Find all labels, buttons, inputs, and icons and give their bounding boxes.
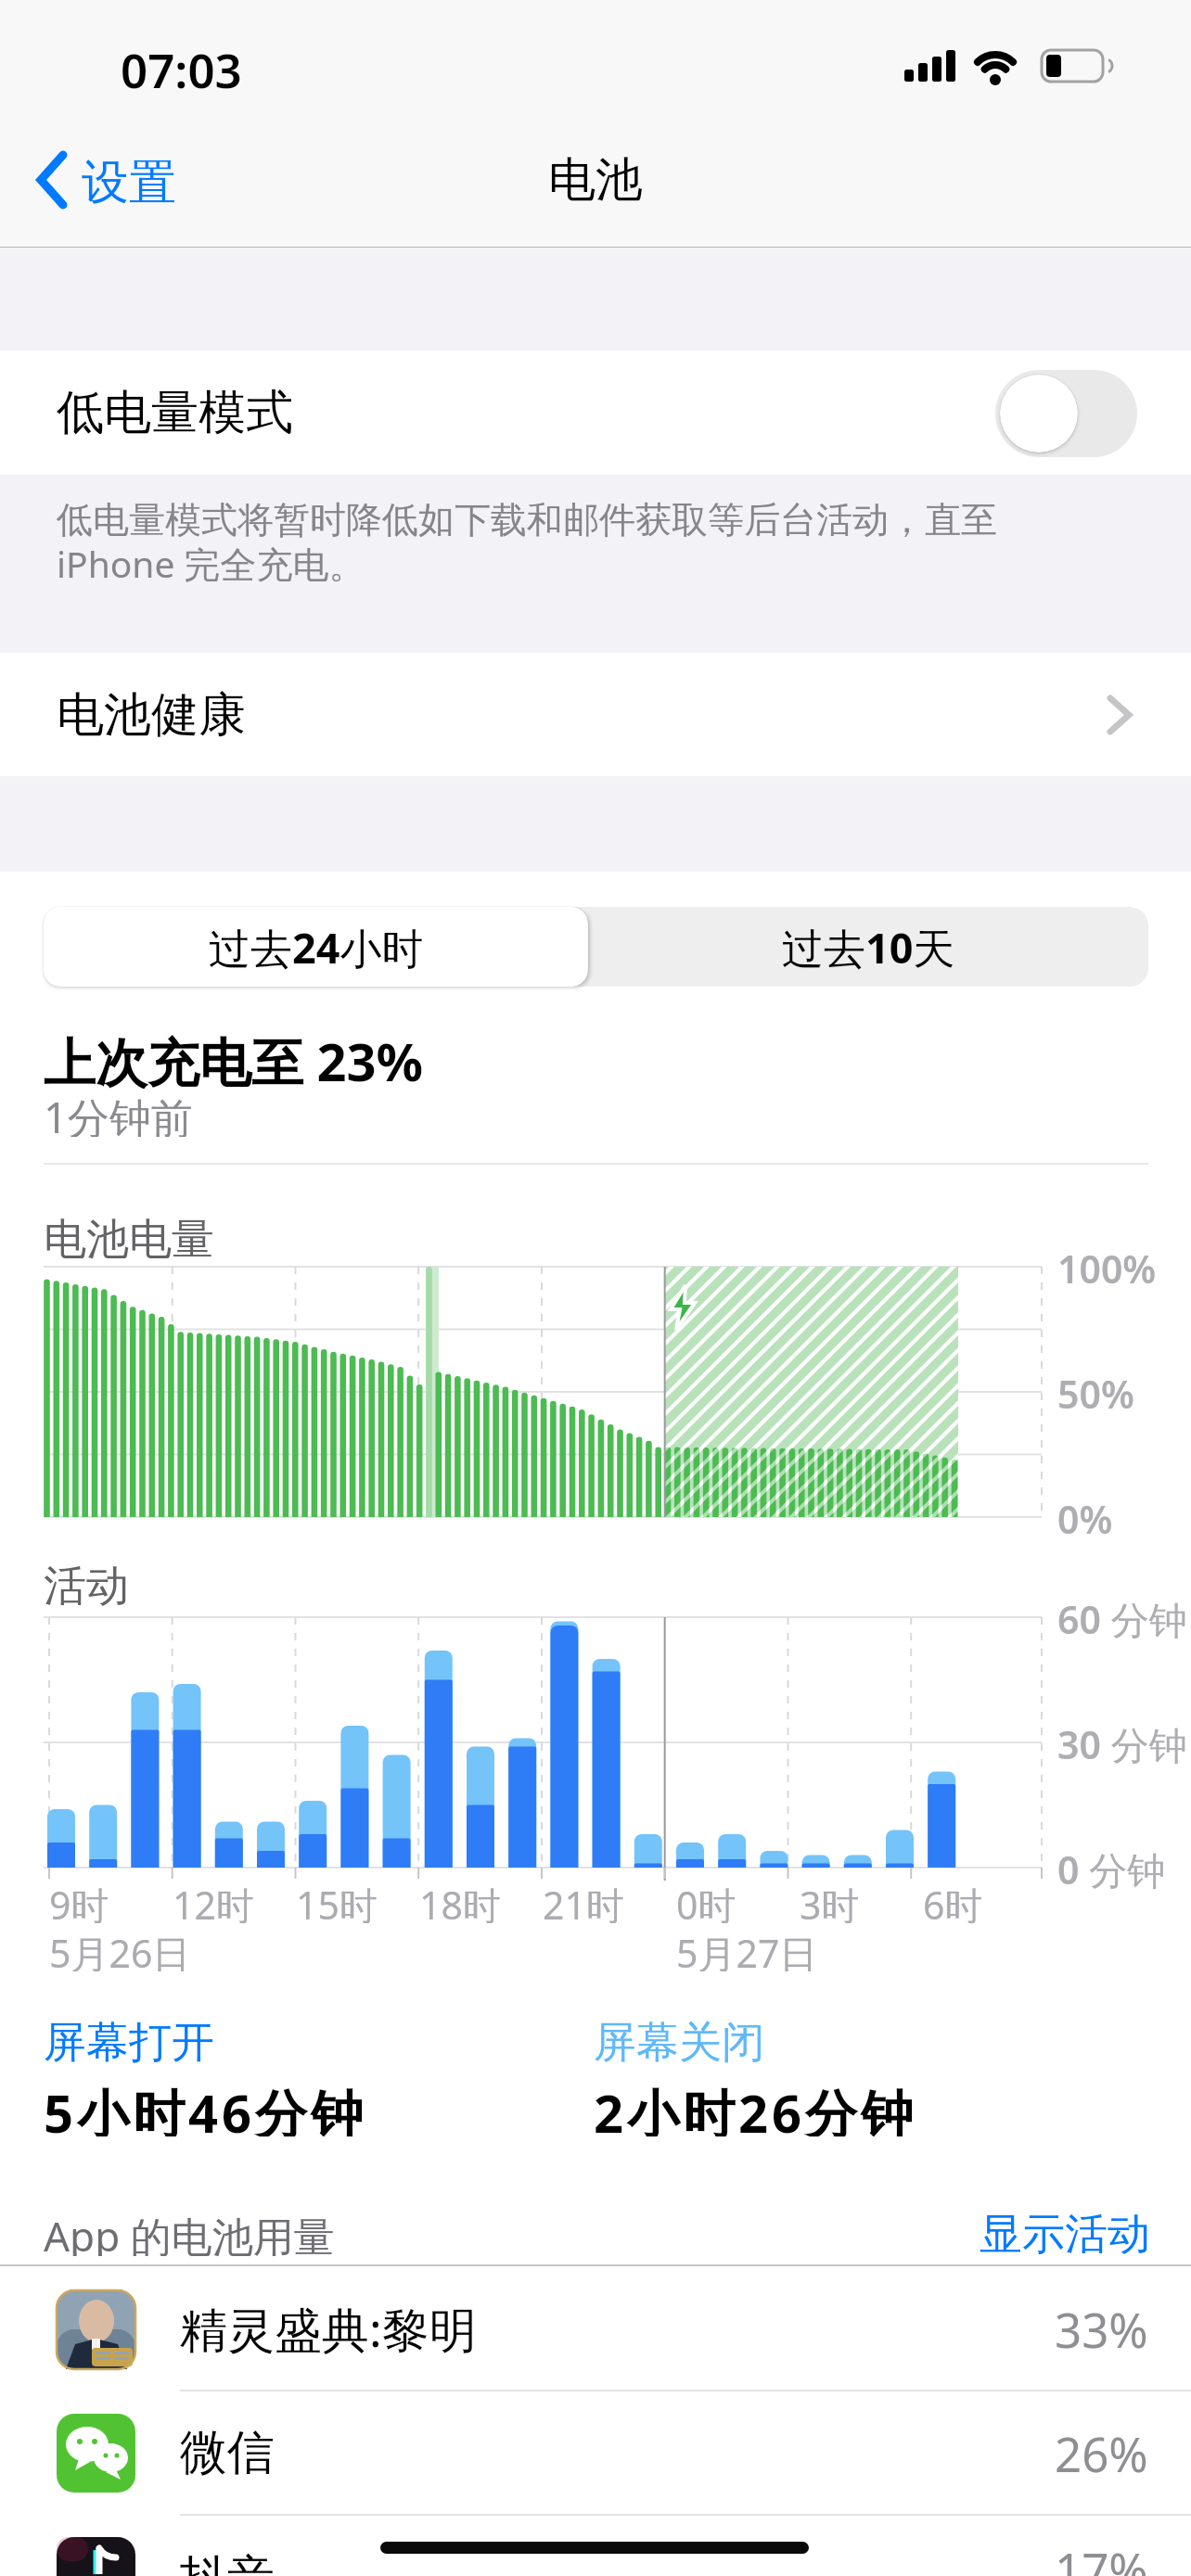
staticText: 3时: [800, 1879, 860, 1923]
staticText: 过去24小时: [209, 919, 424, 976]
staticText: 12时: [173, 1879, 254, 1923]
staticText: 微信: [180, 2423, 275, 2482]
staticText: 15时: [296, 1879, 378, 1923]
staticText: 50%: [1057, 1368, 1134, 1416]
button[interactable]: [44, 907, 588, 987]
staticText: 上次充电至 23%: [44, 1026, 424, 1089]
button[interactable]: 低电量模式: [0, 351, 1191, 475]
button[interactable]: 精灵盛典:黎明: [0, 2266, 1191, 2391]
staticText: 电池: [548, 150, 643, 210]
staticText: 5小时46分钟: [44, 2077, 367, 2136]
button[interactable]: [588, 907, 1148, 987]
staticText: 屏幕关闭: [594, 2016, 764, 2066]
staticText: 21时: [543, 1879, 624, 1923]
staticText: 60 分钟: [1057, 1593, 1187, 1641]
staticText: 过去10天: [782, 919, 955, 976]
staticText: 18时: [419, 1879, 501, 1923]
button[interactable]: 显示活动: [928, 2208, 1150, 2256]
button[interactable]: 电池健康: [0, 653, 1191, 776]
staticText: 0时: [676, 1879, 736, 1923]
staticText: 0 分钟: [1057, 1843, 1166, 1892]
staticText: 07:03: [121, 37, 242, 93]
button[interactable]: 微信: [0, 2391, 1191, 2515]
staticText: 6时: [923, 1879, 983, 1923]
staticText: 33%: [1055, 2297, 1148, 2361]
staticText: 显示活动: [980, 2208, 1150, 2256]
button[interactable]: 抖音: [0, 2515, 1191, 2576]
staticText: 屏幕打开: [44, 2016, 214, 2066]
staticText: 电池健康: [57, 685, 246, 745]
staticText: 设置: [82, 153, 176, 210]
staticText: 电池电量: [44, 1213, 214, 1263]
staticText: 9时: [49, 1879, 109, 1923]
staticText: iPhone 完全充电。: [57, 539, 365, 585]
button[interactable]: 设置: [28, 144, 241, 218]
staticText: 活动: [44, 1560, 129, 1610]
staticText: 2小时26分钟: [594, 2077, 917, 2136]
staticText: 100%: [1057, 1243, 1157, 1291]
staticText: 5月26日: [49, 1927, 191, 1971]
staticText: 30 分钟: [1057, 1718, 1187, 1766]
staticText: 抖音: [180, 2548, 275, 2576]
staticText: 26%: [1055, 2421, 1148, 2485]
staticText: 低电量模式将暂时降低如下载和邮件获取等后台活动，直至: [57, 497, 997, 542]
staticText: 5月27日: [676, 1927, 818, 1971]
staticText: 精灵盛典:黎明: [180, 2296, 477, 2361]
staticText: 低电量模式: [57, 383, 293, 442]
staticText: 1分钟前: [44, 1089, 193, 1137]
staticText: App 的电池用量: [44, 2208, 335, 2256]
staticText: 17%: [1055, 2537, 1148, 2576]
staticText: 0%: [1057, 1493, 1113, 1541]
